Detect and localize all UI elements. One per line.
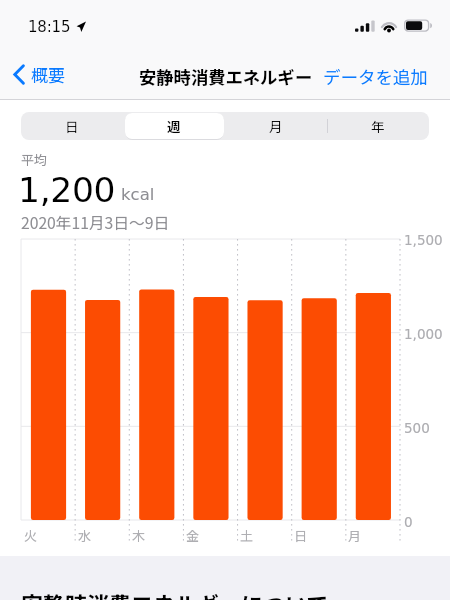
staticText: 週 — [167, 116, 181, 136]
button[interactable]: 週 — [123, 112, 225, 140]
staticText: 1,200 — [18, 170, 116, 210]
button[interactable]: 日 — [21, 112, 123, 140]
staticText: 18:15 — [28, 18, 71, 35]
staticText: 安静時消費エネルギー — [139, 64, 312, 89]
staticText: 土 — [240, 526, 254, 545]
staticText: 水 — [78, 526, 92, 545]
staticText: 500 — [404, 420, 430, 436]
button[interactable]: データを追加 — [323, 64, 428, 89]
staticText: kcal — [121, 185, 155, 204]
staticText: 月 — [348, 526, 362, 545]
staticText: 概要 — [31, 62, 65, 87]
staticText: 日 — [65, 116, 79, 136]
staticText: 2020年11月3日〜9日 — [21, 211, 170, 234]
staticText: 1,500 — [404, 232, 443, 248]
staticText: 火 — [24, 526, 38, 545]
staticText: 金 — [186, 526, 200, 545]
button[interactable]: 月 — [225, 112, 327, 140]
staticText: 木 — [132, 526, 146, 545]
staticText: 平均 — [21, 150, 48, 169]
staticText: 1,000 — [404, 326, 443, 342]
staticText: 0 — [404, 514, 413, 530]
staticText: 安静時消費エネルギーについて — [21, 587, 329, 600]
staticText: 月 — [269, 116, 283, 136]
staticText: 日 — [294, 526, 308, 545]
button[interactable]: 年 — [327, 112, 429, 140]
button[interactable]: 概要 — [13, 62, 65, 87]
staticText: 年 — [371, 116, 385, 136]
